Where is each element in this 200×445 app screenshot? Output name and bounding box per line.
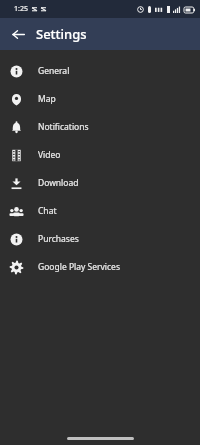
button[interactable]: Notifications <box>0 113 200 141</box>
staticText: Download <box>38 177 79 189</box>
staticText: 1:25 <box>14 4 28 14</box>
button[interactable]: General <box>0 57 200 85</box>
button[interactable]: Video <box>0 141 200 169</box>
button[interactable]: Purchases <box>0 225 200 253</box>
staticText: Purchases <box>38 233 79 245</box>
staticText: Notifications <box>38 121 89 133</box>
button[interactable]: Download <box>0 169 200 197</box>
button[interactable]: Map <box>0 85 200 113</box>
staticText: Settings <box>36 25 87 43</box>
button[interactable]: Google Play Services <box>0 253 200 281</box>
staticText: Video <box>38 149 61 161</box>
button[interactable]: Back <box>6 22 30 46</box>
staticText: Chat <box>38 205 57 217</box>
staticText: Map <box>38 93 56 105</box>
staticText: Google Play Services <box>38 261 120 273</box>
staticText: General <box>38 65 70 77</box>
button[interactable]: Chat <box>0 197 200 225</box>
